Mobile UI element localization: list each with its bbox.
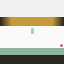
- button[interactable]: [0, 17, 64, 26]
- button[interactable]: Favorite: [60, 44, 63, 47]
